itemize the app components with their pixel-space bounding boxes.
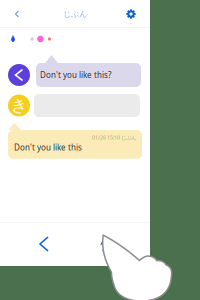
button[interactable]: Settings <box>119 2 150 26</box>
staticText: Don't you like this <box>14 142 82 153</box>
button[interactable]: Previous <box>30 227 58 261</box>
staticText: 01/26 15:10 じぶん <box>92 134 136 141</box>
staticText: き <box>11 96 27 115</box>
button[interactable]: Back <box>0 2 27 26</box>
staticText: じぶん <box>63 9 87 19</box>
staticText: Don't you like this? <box>40 70 111 80</box>
button[interactable]: React <box>88 226 120 262</box>
